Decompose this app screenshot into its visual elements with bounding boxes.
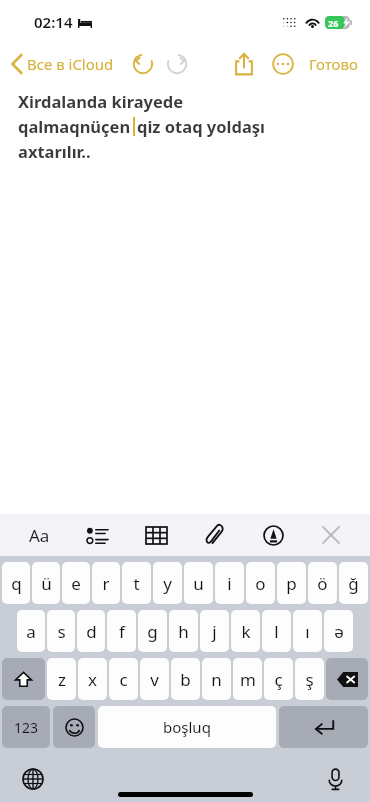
staticText: m [240, 668, 256, 691]
button[interactable]: ç [264, 658, 293, 700]
staticText: v [150, 668, 159, 691]
button[interactable]: x [78, 658, 107, 700]
button[interactable]: Text format [19, 515, 59, 555]
staticText: s [57, 620, 66, 643]
button[interactable]: ü [32, 562, 60, 604]
staticText: ü [41, 572, 52, 595]
staticText: ı [305, 620, 310, 643]
button[interactable]: m [233, 658, 262, 700]
staticText: p [286, 572, 297, 595]
button[interactable]: Attach [194, 515, 234, 555]
staticText: ç [274, 668, 283, 691]
button[interactable]: q [2, 562, 30, 604]
button[interactable]: h [169, 610, 198, 652]
button[interactable]: e [62, 562, 90, 604]
button[interactable]: n [202, 658, 231, 700]
staticText: d [86, 620, 97, 643]
button[interactable]: Close keyboard [311, 515, 351, 555]
button[interactable]: j [200, 610, 229, 652]
staticText: Все в iCloud [27, 54, 114, 74]
staticText: c [119, 668, 128, 691]
staticText: axtarılır.. [18, 140, 91, 162]
button[interactable]: u [184, 562, 213, 604]
staticText: l [274, 620, 279, 643]
staticText: h [178, 620, 189, 643]
staticText: ş [305, 668, 314, 691]
button[interactable]: 123 [2, 706, 50, 748]
staticText: q [11, 572, 22, 595]
button[interactable]: l [262, 610, 291, 652]
staticText: 02:14 [34, 12, 73, 32]
button[interactable]: v [140, 658, 169, 700]
staticText: qiz otaq yoldaşı [137, 115, 266, 137]
button[interactable]: Checklist [77, 515, 117, 555]
button[interactable]: Share [229, 49, 259, 79]
button[interactable]: Backspace [326, 658, 368, 700]
staticText: b [180, 668, 191, 691]
button[interactable]: ə [324, 610, 353, 652]
button[interactable]: Change keyboard [16, 762, 50, 796]
staticText: 123 [14, 718, 39, 737]
button[interactable]: z [47, 658, 76, 700]
button[interactable]: Undo [130, 51, 156, 77]
staticText: i [227, 572, 232, 595]
button[interactable]: g [138, 610, 167, 652]
button[interactable]: c [109, 658, 138, 700]
staticText: z [58, 668, 66, 691]
button[interactable]: b [171, 658, 200, 700]
staticText: r [102, 572, 110, 595]
staticText: ğ [348, 572, 359, 595]
staticText: ə [334, 620, 344, 643]
button[interactable]: ğ [339, 562, 368, 604]
button[interactable]: boşluq [98, 706, 276, 748]
staticText: ö [317, 572, 328, 595]
button[interactable]: Return [279, 706, 368, 748]
button[interactable]: Все в iCloud [10, 50, 116, 78]
staticText: y [163, 572, 172, 595]
button[interactable]: s [47, 610, 75, 652]
button[interactable]: d [77, 610, 105, 652]
button[interactable]: Emoji [53, 706, 95, 748]
staticText: Xirdalanda kirayede [18, 90, 184, 112]
staticText: Aa [29, 524, 50, 547]
button[interactable]: ö [308, 562, 337, 604]
button[interactable]: o [246, 562, 275, 604]
staticText: j [212, 620, 217, 643]
staticText: 26 [328, 17, 339, 29]
button[interactable]: Готово [307, 50, 360, 78]
button[interactable]: f [107, 610, 136, 652]
staticText: o [255, 572, 266, 595]
staticText: qalmaqnüçen [18, 115, 131, 137]
staticText: f [119, 620, 125, 643]
button[interactable]: ş [295, 658, 324, 700]
button[interactable]: Redo [164, 51, 190, 77]
staticText: a [26, 620, 36, 643]
staticText: n [211, 668, 222, 691]
button[interactable]: Dictate [318, 762, 352, 796]
button[interactable]: Table [136, 515, 176, 555]
button[interactable]: a [17, 610, 45, 652]
staticText: boşluq [163, 717, 211, 737]
button[interactable]: y [153, 562, 182, 604]
button[interactable]: i [215, 562, 244, 604]
button[interactable]: ı [293, 610, 322, 652]
button[interactable]: k [231, 610, 260, 652]
staticText: x [88, 668, 97, 691]
staticText: k [241, 620, 251, 643]
button[interactable]: Markup [253, 515, 293, 555]
button[interactable]: Shift [2, 658, 45, 700]
button[interactable]: More options [269, 50, 297, 78]
staticText: g [147, 620, 158, 643]
button[interactable]: t [122, 562, 151, 604]
button[interactable]: p [277, 562, 306, 604]
staticText: Готово [309, 54, 358, 74]
button[interactable]: r [92, 562, 120, 604]
staticText: e [71, 572, 81, 595]
staticText: u [193, 572, 204, 595]
staticText: t [133, 572, 140, 595]
